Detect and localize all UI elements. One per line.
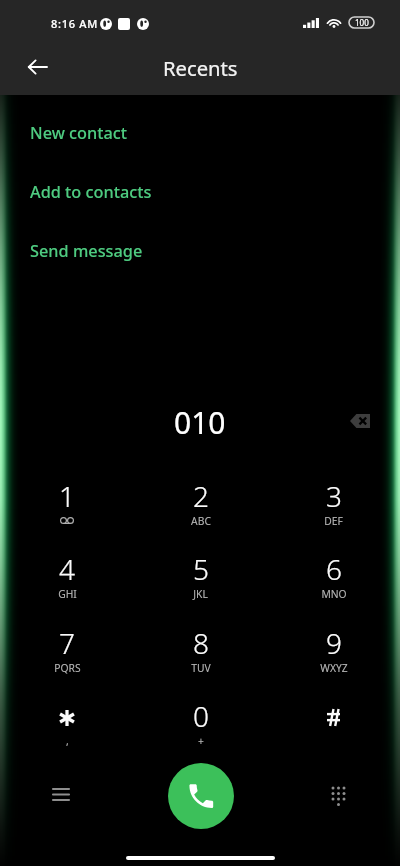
staticText: 2 (193, 477, 209, 515)
staticText: 0 (193, 697, 209, 735)
staticText: , (66, 734, 69, 748)
button[interactable]: 0 (134, 680, 267, 753)
button[interactable]: 5 (134, 533, 267, 606)
button[interactable]: 3 (267, 460, 400, 533)
button[interactable]: , (0, 680, 134, 753)
staticText: GHI (58, 587, 77, 601)
button[interactable]: Call (168, 763, 234, 829)
staticText: JKL (193, 587, 208, 601)
staticText: 8 (193, 624, 209, 662)
staticText: ABC (191, 514, 211, 528)
staticText: TUV (191, 661, 211, 675)
staticText: 1 (59, 477, 75, 515)
staticText: 5 (193, 550, 209, 588)
staticText: Add to contacts (30, 181, 152, 203)
staticText: MNO (321, 587, 347, 601)
button[interactable]: 2 (134, 460, 267, 533)
button[interactable]: 4 (0, 533, 134, 606)
button[interactable]: Backspace (338, 399, 382, 443)
button[interactable]: 7 (0, 607, 134, 680)
button[interactable]: Add to contacts (0, 163, 400, 222)
button[interactable]: 8 (134, 607, 267, 680)
staticText: DEF (324, 514, 343, 528)
button[interactable]: New contact (0, 104, 400, 163)
staticText: Send message (30, 240, 143, 262)
button[interactable]: 1 (0, 460, 134, 533)
staticText: 7 (59, 624, 75, 662)
button[interactable]: Menu (39, 772, 83, 816)
staticText: WXYZ (320, 661, 348, 675)
button[interactable]: Keypad (316, 774, 360, 818)
staticText: New contact (30, 122, 128, 144)
staticText: 9 (326, 624, 342, 662)
staticText: 6 (326, 550, 342, 588)
staticText: 4 (59, 550, 75, 588)
button[interactable]: 6 (267, 533, 400, 606)
staticText: Recents (163, 54, 238, 82)
button[interactable]: 9 (267, 607, 400, 680)
button[interactable]: Send message (0, 222, 400, 281)
button[interactable] (267, 680, 400, 753)
staticText: 010 (174, 402, 226, 443)
staticText: 100 (355, 17, 369, 28)
staticText: 3 (326, 477, 342, 515)
staticText: + (198, 734, 204, 748)
button[interactable]: Back (16, 46, 58, 88)
staticText: PQRS (54, 661, 81, 675)
staticText: 8:16 AM (51, 16, 98, 31)
